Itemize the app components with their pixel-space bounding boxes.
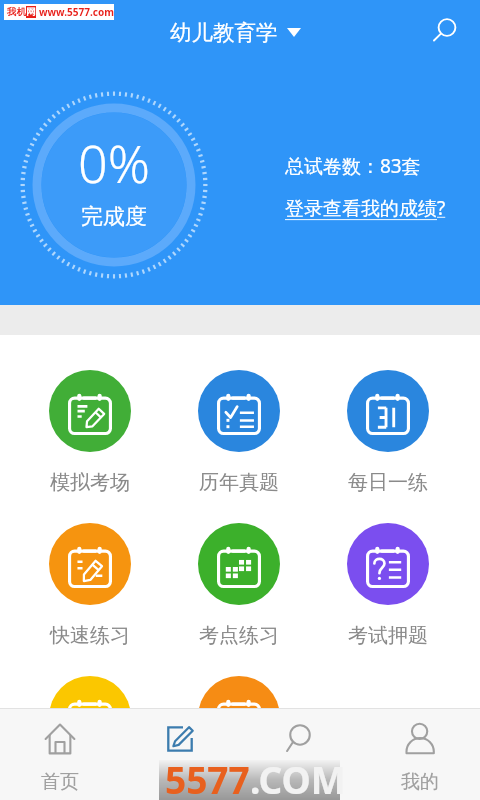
button[interactable]: 考点练习 xyxy=(175,520,303,650)
staticText: 5577 xyxy=(165,754,250,794)
staticText: 总试卷数：83套 xyxy=(285,153,421,179)
staticText: 我的 xyxy=(401,770,439,794)
button[interactable] xyxy=(26,673,154,800)
button[interactable]: 考试押题 xyxy=(324,520,452,650)
button[interactable]: Search xyxy=(240,708,360,800)
staticText: .COM xyxy=(250,754,346,794)
button[interactable]: 每日一练 xyxy=(324,367,452,497)
button[interactable]: 首页 xyxy=(0,708,120,800)
button[interactable]: 模拟考场 xyxy=(26,367,154,497)
button[interactable]: 快速练习 xyxy=(26,520,154,650)
staticText: 我机 xyxy=(7,6,26,18)
staticText: 首页 xyxy=(41,770,79,794)
staticText: 0% xyxy=(78,127,150,198)
staticText: 历年真题 xyxy=(199,470,279,495)
staticText: 快速练习 xyxy=(50,623,130,648)
staticText: 考试押题 xyxy=(348,623,428,648)
button[interactable]: 幼儿教育学 xyxy=(170,19,301,46)
staticText: 网 xyxy=(26,6,36,18)
staticText: 完成度 xyxy=(81,203,147,231)
button[interactable]: Search xyxy=(422,0,480,58)
staticText: 每日一练 xyxy=(348,470,428,495)
button[interactable]: 历年真题 xyxy=(175,367,303,497)
button[interactable]: 我的 xyxy=(360,708,480,800)
button[interactable] xyxy=(175,673,303,800)
staticText: 幼儿教育学 xyxy=(170,19,278,46)
button[interactable]: Compose xyxy=(120,708,240,800)
staticText: www.5577.com xyxy=(39,5,114,19)
button[interactable]: 登录查看我的成绩? xyxy=(285,195,446,221)
staticText: 考点练习 xyxy=(199,623,279,648)
staticText: 模拟考场 xyxy=(50,470,130,495)
